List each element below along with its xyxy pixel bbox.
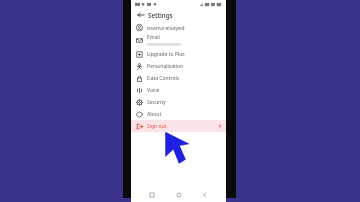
- button[interactable]: Email: [131, 33, 226, 47]
- button[interactable]: Back: [135, 9, 146, 20]
- button[interactable]: About: [131, 108, 226, 120]
- staticText: Voice: [147, 87, 160, 94]
- staticText: About: [147, 111, 162, 118]
- staticText: Sign out: [147, 123, 167, 130]
- staticText: Settings: [148, 11, 173, 19]
- button[interactable]: Upgrade to Plus: [131, 48, 226, 60]
- button[interactable]: Personalization: [131, 60, 226, 72]
- staticText: Security: [147, 99, 166, 106]
- button[interactable]: Voice: [131, 84, 226, 96]
- button[interactable]: Sign out: [131, 120, 226, 132]
- button[interactable]: Data Controls: [131, 72, 226, 84]
- button[interactable]: Security: [131, 96, 226, 108]
- staticText: Personalization: [147, 63, 184, 70]
- button[interactable]: Home: [173, 189, 185, 201]
- button[interactable]: Recents: [146, 189, 158, 201]
- button[interactable]: osama elsayed: [131, 21, 226, 33]
- staticText: Upgrade to Plus: [147, 51, 185, 58]
- staticText: Data Controls: [147, 75, 180, 82]
- staticText: Email: [147, 34, 160, 41]
- button[interactable]: Back: [199, 189, 211, 201]
- staticText: osama elsayed: [147, 24, 185, 31]
